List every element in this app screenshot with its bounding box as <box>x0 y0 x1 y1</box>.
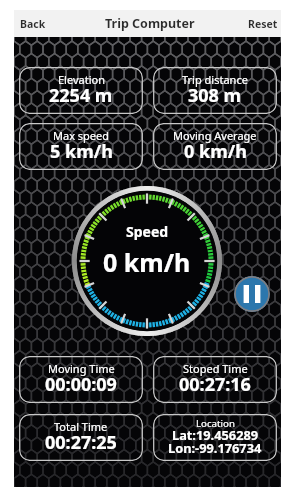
staticText: Moving Time <box>48 361 115 376</box>
staticText: 308 m <box>188 83 242 108</box>
button[interactable]: Elevation <box>19 67 143 114</box>
staticText: Lon:-99.176734 <box>168 439 262 456</box>
button[interactable]: Back <box>14 12 56 36</box>
staticText: 0 km/h <box>184 139 247 164</box>
button[interactable]: Location <box>153 414 277 461</box>
button[interactable]: Max speed <box>19 123 143 170</box>
button[interactable]: Stoped Time <box>153 356 277 403</box>
staticText: Location <box>196 417 235 430</box>
button[interactable]: Trip distance <box>153 67 277 114</box>
staticText: Elevation <box>58 72 105 87</box>
button[interactable]: Moving Average <box>153 123 277 170</box>
staticText: Total Time <box>54 419 108 434</box>
button[interactable]: Moving Time <box>19 356 143 403</box>
staticText: Trip distance <box>182 72 248 87</box>
staticText: Reset <box>248 17 278 31</box>
button[interactable]: Reset <box>238 12 281 36</box>
button[interactable]: Total Time <box>19 414 143 461</box>
staticText: Lat:19.456289 <box>172 426 259 443</box>
staticText: 00:27:16 <box>179 372 251 397</box>
staticText: 0 km/h <box>103 245 191 279</box>
staticText: 5 km/h <box>50 139 113 164</box>
staticText: 00:00:09 <box>45 372 117 397</box>
staticText: Stoped Time <box>183 361 248 376</box>
button[interactable]: Pause <box>234 276 270 312</box>
staticText: Speed <box>126 222 169 241</box>
staticText: 2254 m <box>49 83 113 108</box>
staticText: Max speed <box>53 128 110 143</box>
staticText: Back <box>20 17 46 31</box>
staticText: Moving Average <box>173 128 257 143</box>
staticText: 00:27:25 <box>45 430 117 455</box>
staticText: Trip Computer <box>105 15 195 32</box>
